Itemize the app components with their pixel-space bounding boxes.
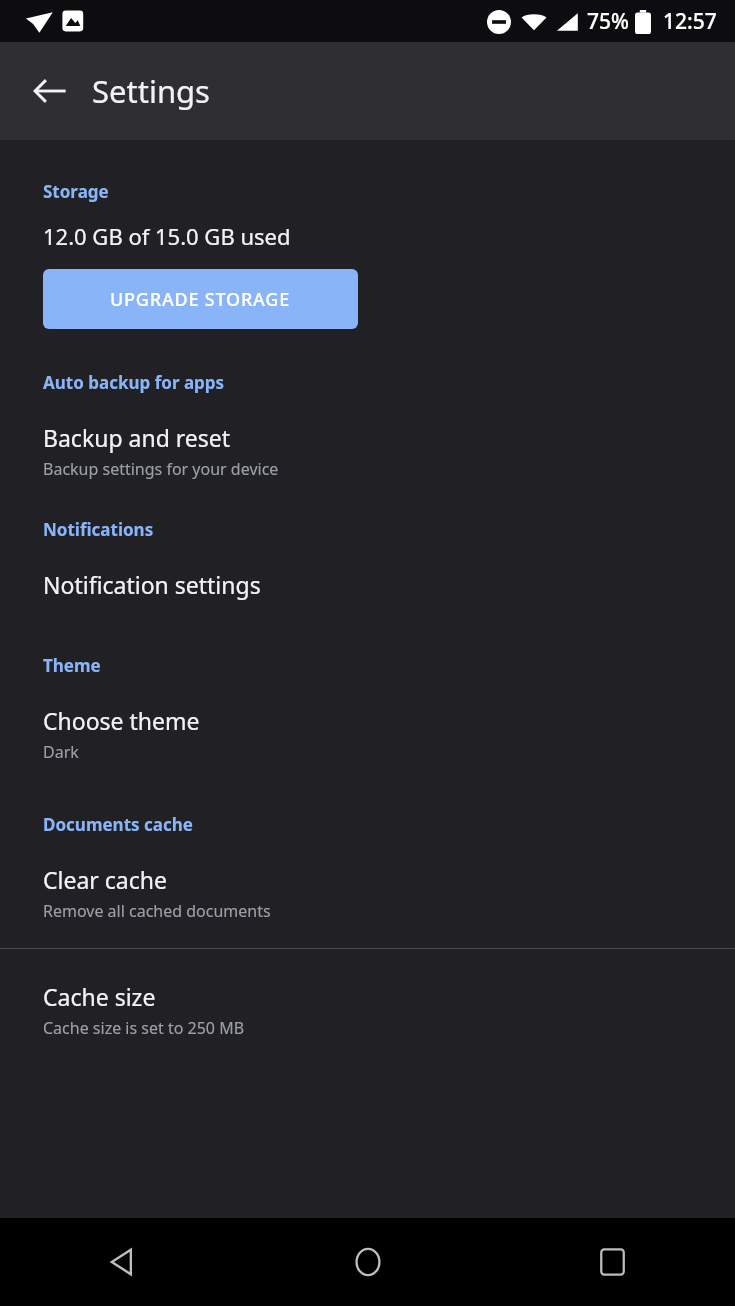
staticText: Notifications — [43, 518, 154, 541]
staticText: Storage — [43, 180, 109, 203]
staticText: Clear cache — [43, 864, 167, 895]
staticText: Remove all cached documents — [43, 900, 271, 922]
button[interactable]: Back — [0, 1218, 245, 1306]
staticText: Documents cache — [43, 813, 193, 836]
button[interactable]: Notification settings — [0, 541, 735, 606]
button[interactable]: UPGRADE STORAGE — [43, 269, 358, 329]
staticText: 12:57 — [663, 7, 717, 36]
staticText: Cache size — [43, 981, 156, 1012]
staticText: Backup and reset — [43, 422, 231, 453]
staticText: Settings — [92, 70, 210, 112]
staticText: Theme — [43, 654, 101, 677]
staticText: Auto backup for apps — [43, 371, 225, 394]
button[interactable]: Recent apps — [490, 1218, 735, 1306]
staticText: Backup settings for your device — [43, 458, 279, 480]
staticText: Dark — [43, 741, 79, 763]
button[interactable]: Backup and reset — [0, 394, 735, 486]
button[interactable]: Choose theme — [0, 677, 735, 769]
staticText: 12.0 GB of 15.0 GB used — [43, 221, 291, 251]
staticText: UPGRADE STORAGE — [110, 287, 291, 312]
button[interactable]: Cache size — [0, 949, 735, 1045]
button[interactable]: Back — [18, 59, 82, 123]
staticText: Cache size is set to 250 MB — [43, 1017, 245, 1039]
staticText: Choose theme — [43, 705, 200, 736]
staticText: 75% — [587, 7, 629, 36]
button[interactable]: Clear cache — [0, 836, 735, 928]
button[interactable]: Home — [245, 1218, 490, 1306]
staticText: Notification settings — [43, 569, 261, 600]
